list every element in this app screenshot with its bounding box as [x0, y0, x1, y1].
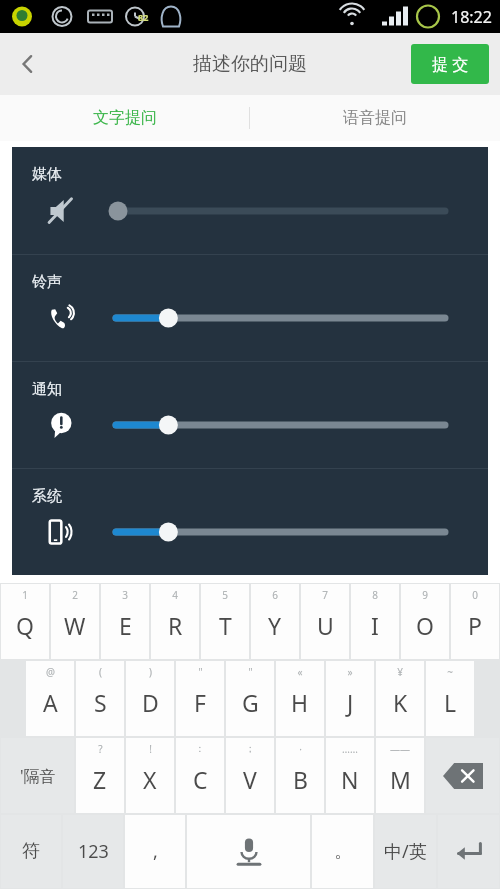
staticText: 铃声 — [32, 273, 62, 292]
staticText: X — [143, 764, 157, 795]
button[interactable]: Back — [0, 33, 56, 95]
button[interactable]: 语音提问 — [250, 95, 500, 141]
button[interactable]: ( — [76, 661, 124, 736]
button[interactable]: 符 — [1, 815, 61, 888]
button[interactable]: 1 — [1, 584, 49, 659]
staticText: P — [468, 610, 482, 641]
staticText: 中/英 — [384, 839, 427, 864]
staticText: 4 — [172, 588, 178, 602]
staticText: T — [219, 610, 232, 641]
button[interactable]: 0 — [451, 584, 499, 659]
staticText: V — [243, 764, 257, 795]
staticText: 7 — [322, 588, 328, 602]
staticText: 18:22 — [451, 6, 492, 28]
staticText: « — [297, 665, 303, 679]
button[interactable]: ： — [176, 738, 224, 813]
staticText: 0 — [472, 588, 478, 602]
button[interactable]: 7 — [301, 584, 349, 659]
button[interactable]: 。 — [312, 815, 373, 888]
button[interactable]: 9 — [401, 584, 449, 659]
staticText: 提 交 — [432, 53, 469, 75]
staticText: 82 — [138, 11, 149, 23]
button[interactable]: —— — [376, 738, 424, 813]
staticText: K — [393, 687, 408, 718]
button[interactable]: » — [326, 661, 374, 736]
button[interactable]: , — [125, 815, 185, 888]
staticText: M — [390, 764, 411, 795]
button[interactable]: 中/英 — [375, 815, 436, 888]
staticText: 。 — [334, 840, 352, 863]
staticText: O — [416, 610, 434, 641]
button[interactable]: 123 — [63, 815, 123, 888]
button[interactable]: 4 — [151, 584, 199, 659]
staticText: · — [299, 742, 302, 756]
staticText: B — [293, 764, 308, 795]
staticText: L — [444, 687, 457, 718]
staticText: D — [142, 687, 159, 718]
staticText: " — [198, 665, 203, 679]
staticText: , — [153, 839, 158, 864]
staticText: @ — [46, 665, 55, 679]
staticText: 2 — [72, 588, 78, 602]
staticText: 123 — [78, 839, 109, 864]
button[interactable]: 6 — [251, 584, 299, 659]
button[interactable]: · — [276, 738, 324, 813]
button[interactable]: Enter — [438, 815, 499, 888]
staticText: 文字提问 — [93, 108, 157, 128]
button[interactable]: ? — [76, 738, 124, 813]
staticText: H — [291, 687, 309, 718]
button[interactable]: …… — [326, 738, 374, 813]
button[interactable]: @ — [26, 661, 74, 736]
button[interactable]: " — [226, 661, 274, 736]
button[interactable]: ! — [126, 738, 174, 813]
staticText: 系统 — [32, 487, 62, 506]
staticText: 6 — [272, 588, 278, 602]
staticText: 9 — [422, 588, 428, 602]
staticText: Q — [16, 610, 34, 641]
button[interactable]: 3 — [101, 584, 149, 659]
button[interactable]: ) — [126, 661, 174, 736]
staticText: 媒体 — [32, 165, 62, 184]
staticText: 5 — [222, 588, 228, 602]
staticText: 语音提问 — [343, 108, 407, 128]
button[interactable]: 8 — [351, 584, 399, 659]
staticText: ) — [149, 665, 152, 679]
staticText: E — [119, 610, 132, 641]
button[interactable]: '隔音 — [1, 738, 74, 813]
staticText: I — [371, 610, 379, 641]
staticText: —— — [390, 742, 410, 756]
button[interactable]: Backspace — [426, 738, 499, 813]
button[interactable]: Voice input — [187, 815, 310, 888]
button[interactable]: 提 交 — [411, 44, 489, 84]
staticText: J — [347, 687, 354, 718]
staticText: Y — [268, 610, 282, 641]
staticText: …… — [342, 742, 358, 756]
staticText: ； — [245, 742, 255, 755]
staticText: C — [193, 764, 208, 795]
staticText: ~ — [447, 665, 453, 679]
staticText: G — [242, 687, 259, 718]
staticText: 3 — [122, 588, 128, 602]
button[interactable]: 5 — [201, 584, 249, 659]
staticText: ? — [98, 742, 103, 756]
staticText: 1 — [22, 588, 28, 602]
button[interactable]: 2 — [51, 584, 99, 659]
button[interactable]: ¥ — [376, 661, 424, 736]
staticText: R — [168, 610, 183, 641]
button[interactable]: 文字提问 — [0, 95, 249, 141]
staticText: 描述你的问题 — [193, 52, 307, 76]
staticText: W — [64, 610, 86, 641]
staticText: 8 — [372, 588, 378, 602]
button[interactable]: ~ — [426, 661, 474, 736]
staticText: S — [94, 687, 107, 718]
staticText: 通知 — [32, 380, 62, 399]
button[interactable]: « — [276, 661, 324, 736]
staticText: A — [43, 687, 58, 718]
staticText: U — [317, 610, 334, 641]
staticText: ! — [149, 742, 152, 756]
button[interactable]: " — [176, 661, 224, 736]
staticText: ( — [99, 665, 102, 679]
staticText: ¥ — [397, 665, 403, 679]
button[interactable]: ； — [226, 738, 274, 813]
staticText: Z — [93, 764, 107, 795]
